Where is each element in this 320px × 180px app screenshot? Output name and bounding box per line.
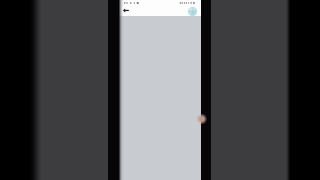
button[interactable]: Back bbox=[121, 6, 130, 15]
button[interactable]: Profile bbox=[188, 7, 197, 16]
